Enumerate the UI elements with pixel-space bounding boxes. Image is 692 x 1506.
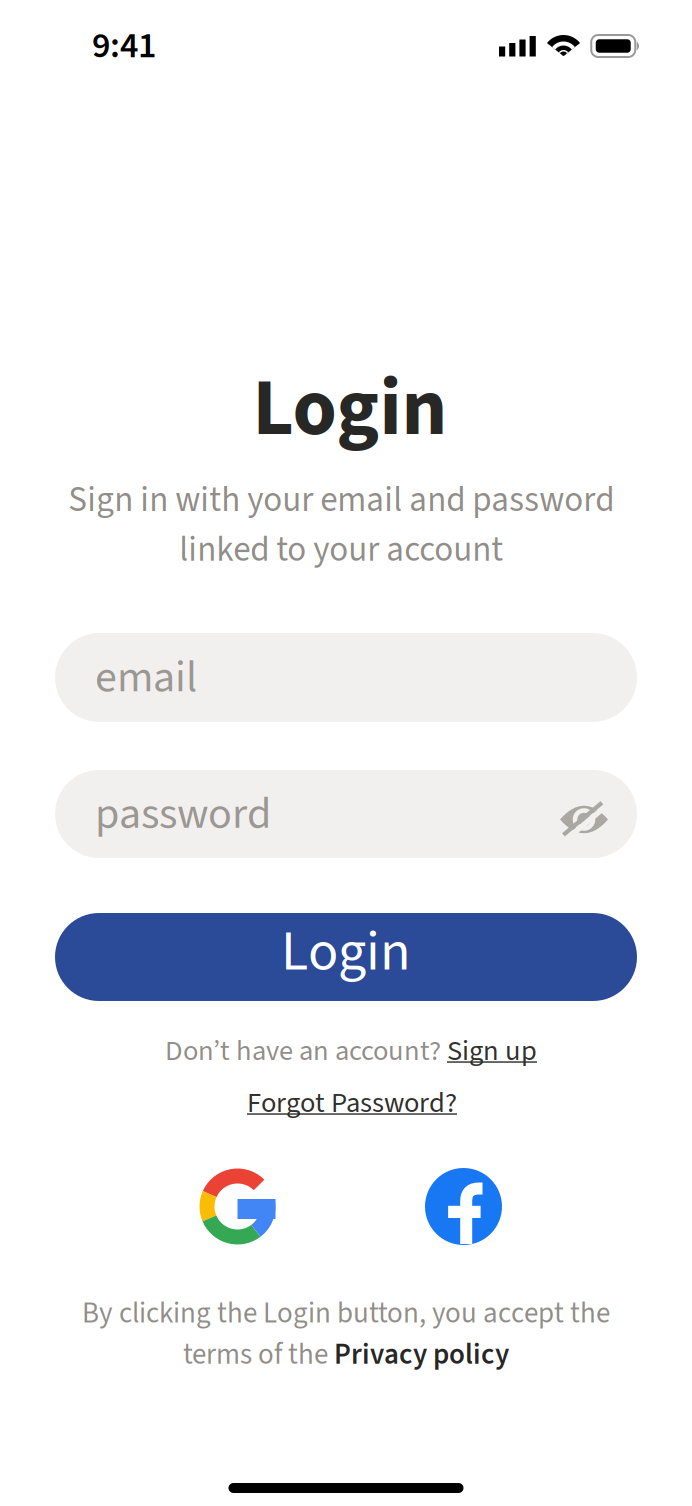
staticText: Login bbox=[281, 912, 411, 992]
button[interactable]: Login bbox=[55, 913, 637, 1001]
button[interactable]: email bbox=[55, 633, 637, 722]
staticText: Sign in with your email and password lin… bbox=[68, 475, 614, 575]
button[interactable]: password bbox=[55, 770, 637, 858]
button[interactable]: Home bbox=[228, 1483, 463, 1493]
button[interactable]: Sign in with Google bbox=[199, 1168, 276, 1245]
staticText: email bbox=[95, 646, 197, 709]
staticText: Forgot Password? bbox=[247, 1083, 457, 1123]
staticText: Login bbox=[252, 352, 447, 466]
button[interactable]: Sign in with Facebook bbox=[425, 1168, 502, 1245]
staticText: By clicking the Login button, you accept… bbox=[82, 1293, 610, 1334]
staticText: Privacy policy bbox=[334, 1334, 509, 1375]
button[interactable]: Privacy policy bbox=[334, 1334, 509, 1375]
button[interactable]: Don’t have an account? bbox=[160, 1030, 532, 1072]
staticText: Sign up bbox=[447, 1031, 537, 1071]
staticText: 9:41 bbox=[92, 20, 156, 72]
staticText: Don’t have an account? bbox=[165, 1031, 447, 1071]
staticText: terms of the bbox=[183, 1334, 334, 1375]
button[interactable]: Forgot Password? bbox=[241, 1082, 451, 1124]
staticText: password bbox=[95, 783, 271, 845]
